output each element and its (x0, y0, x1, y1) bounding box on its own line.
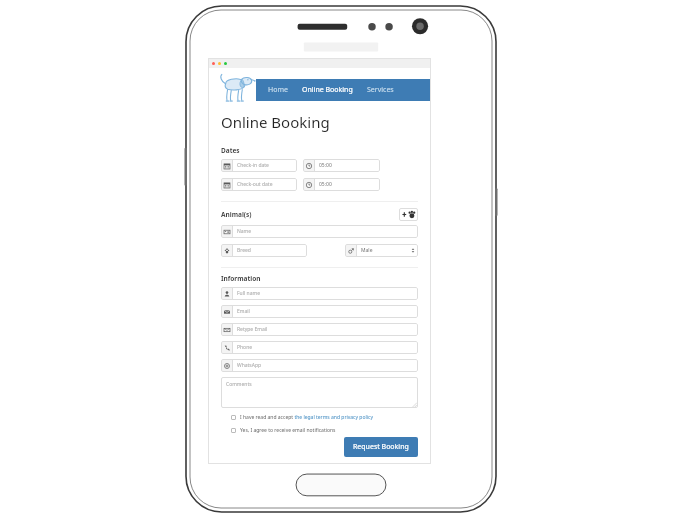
staticText: Check-out date (237, 181, 273, 188)
button[interactable]: 05:00 (303, 178, 380, 191)
button[interactable]: Home (264, 82, 292, 98)
staticText: Male (361, 247, 373, 254)
staticText: Request Booking (353, 442, 409, 452)
button[interactable]: Request Booking (344, 437, 418, 457)
staticText: Yes, I agree to receive email notificati… (240, 427, 336, 434)
button[interactable]: Phone (221, 341, 418, 354)
button[interactable]: I have read and accept the legal terms a… (231, 414, 418, 421)
button[interactable]: Retype Email (221, 323, 418, 336)
button[interactable]: Email (221, 305, 418, 318)
button[interactable]: Yes, I agree to receive email notificati… (231, 427, 418, 434)
button[interactable]: Full name (221, 287, 418, 300)
staticText: Phone (237, 344, 253, 351)
staticText: Online Booking (302, 85, 353, 95)
staticText: Full name (237, 290, 260, 297)
staticText: I have read and accept the legal terms a… (240, 414, 373, 421)
staticText: WhatsApp (237, 362, 262, 369)
button[interactable]: 05:00 (303, 159, 380, 172)
staticText: 05:00 (319, 181, 332, 188)
button[interactable]: Add animal (399, 208, 418, 221)
staticText: Email (237, 308, 250, 315)
staticText: Name (237, 228, 252, 235)
button[interactable]: Male (345, 244, 418, 257)
button[interactable]: Breed (221, 244, 307, 257)
staticText: Check-in date (237, 162, 269, 169)
button[interactable]: Services (363, 82, 398, 98)
staticText: Animal(s) (221, 210, 252, 219)
button[interactable]: WhatsApp (221, 359, 418, 372)
staticText: Home (268, 85, 288, 95)
staticText: Information (221, 274, 261, 283)
staticText: Breed (237, 247, 251, 254)
staticText: 05:00 (319, 162, 332, 169)
staticText: Services (367, 85, 394, 95)
staticText: Online Booking (221, 112, 330, 132)
staticText: Dates (221, 146, 240, 155)
staticText: Comments (226, 381, 252, 388)
button[interactable]: Comments (221, 377, 418, 408)
button[interactable]: Name (221, 225, 418, 238)
button[interactable]: Online Booking (298, 82, 357, 98)
button[interactable]: Check-out date (221, 178, 297, 191)
staticText: Retype Email (237, 326, 268, 333)
button[interactable]: Check-in date (221, 159, 297, 172)
